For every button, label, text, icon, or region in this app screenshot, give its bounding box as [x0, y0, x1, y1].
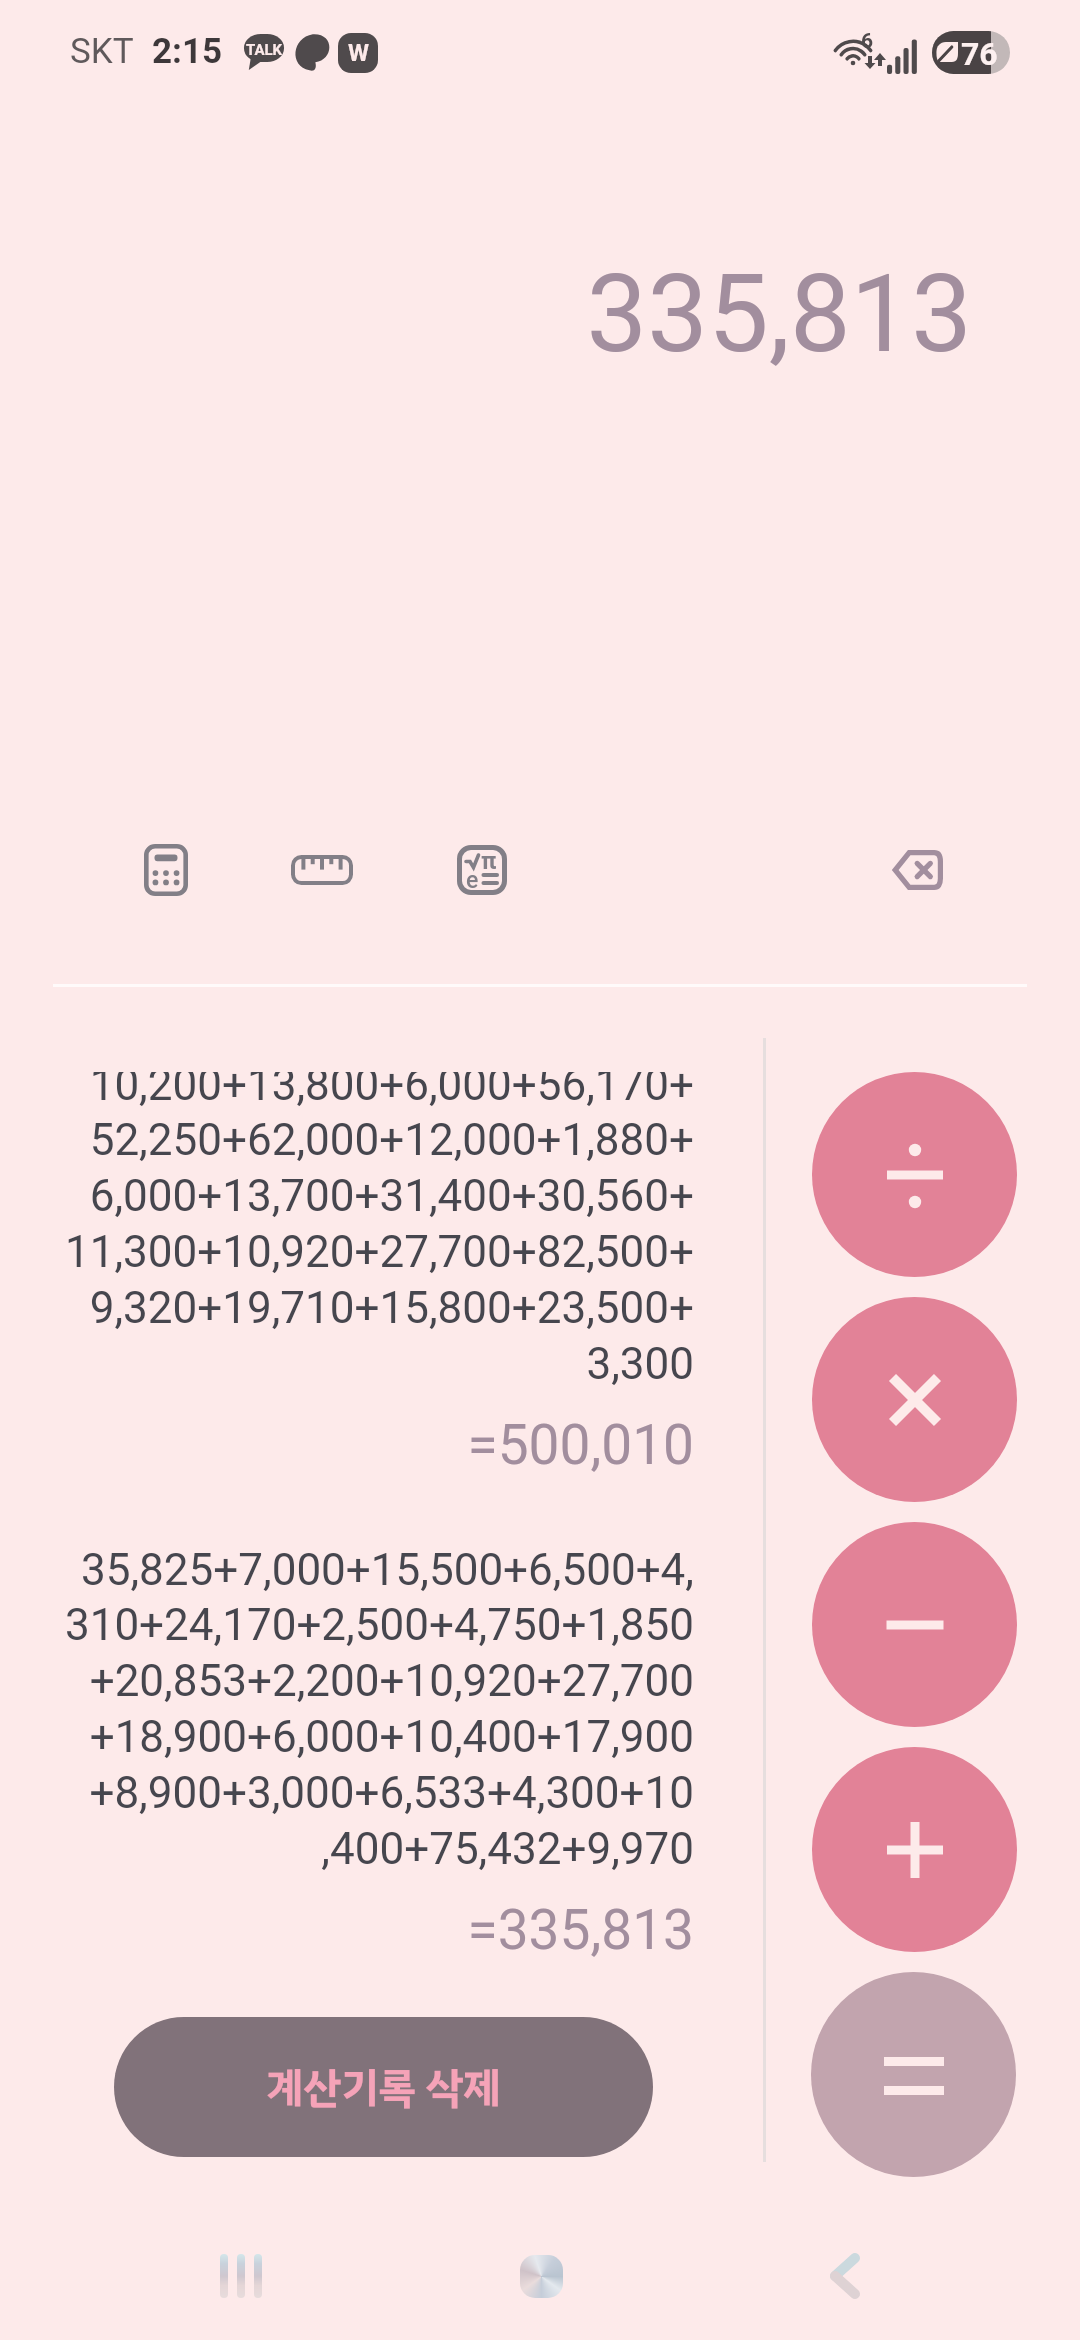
button[interactable]: Calculator — [116, 820, 216, 920]
staticText: 계산기록 삭제 — [266, 2056, 501, 2119]
button[interactable]: Back — [790, 2221, 900, 2331]
staticText: SKT — [70, 31, 134, 72]
staticText: W — [348, 39, 369, 67]
button[interactable]: Scientific calculator — [432, 820, 532, 920]
staticText: 35,825+7,000+15,500+6,500+4, 310+24,170+… — [1, 1544, 694, 1875]
button[interactable]: Multiply — [812, 1297, 1017, 1502]
staticText: 2:15 — [152, 31, 223, 72]
button[interactable]: 계산기록 삭제 — [114, 2017, 653, 2157]
button[interactable]: Add — [812, 1747, 1017, 1952]
button[interactable]: Unit converter — [272, 820, 372, 920]
staticText: 335,813 — [0, 251, 972, 378]
button[interactable]: Backspace — [862, 815, 972, 925]
staticText: 76 — [961, 35, 998, 73]
staticText: 6 — [861, 29, 874, 54]
staticText: =335,813 — [1, 1898, 694, 1962]
staticText: π — [481, 847, 497, 875]
staticText: e — [466, 867, 479, 894]
staticText: 10,200+13,800+6,000+56,170+ 52,250+62,00… — [1, 1072, 694, 1390]
staticText: =500,010 — [1, 1413, 694, 1477]
staticText: TALK — [246, 41, 283, 59]
button[interactable]: Equals — [811, 1972, 1016, 2177]
button[interactable]: Recent apps — [186, 2221, 296, 2331]
button[interactable]: Home — [486, 2221, 596, 2331]
button[interactable]: Divide — [812, 1072, 1017, 1277]
button[interactable]: Subtract — [812, 1522, 1017, 1727]
